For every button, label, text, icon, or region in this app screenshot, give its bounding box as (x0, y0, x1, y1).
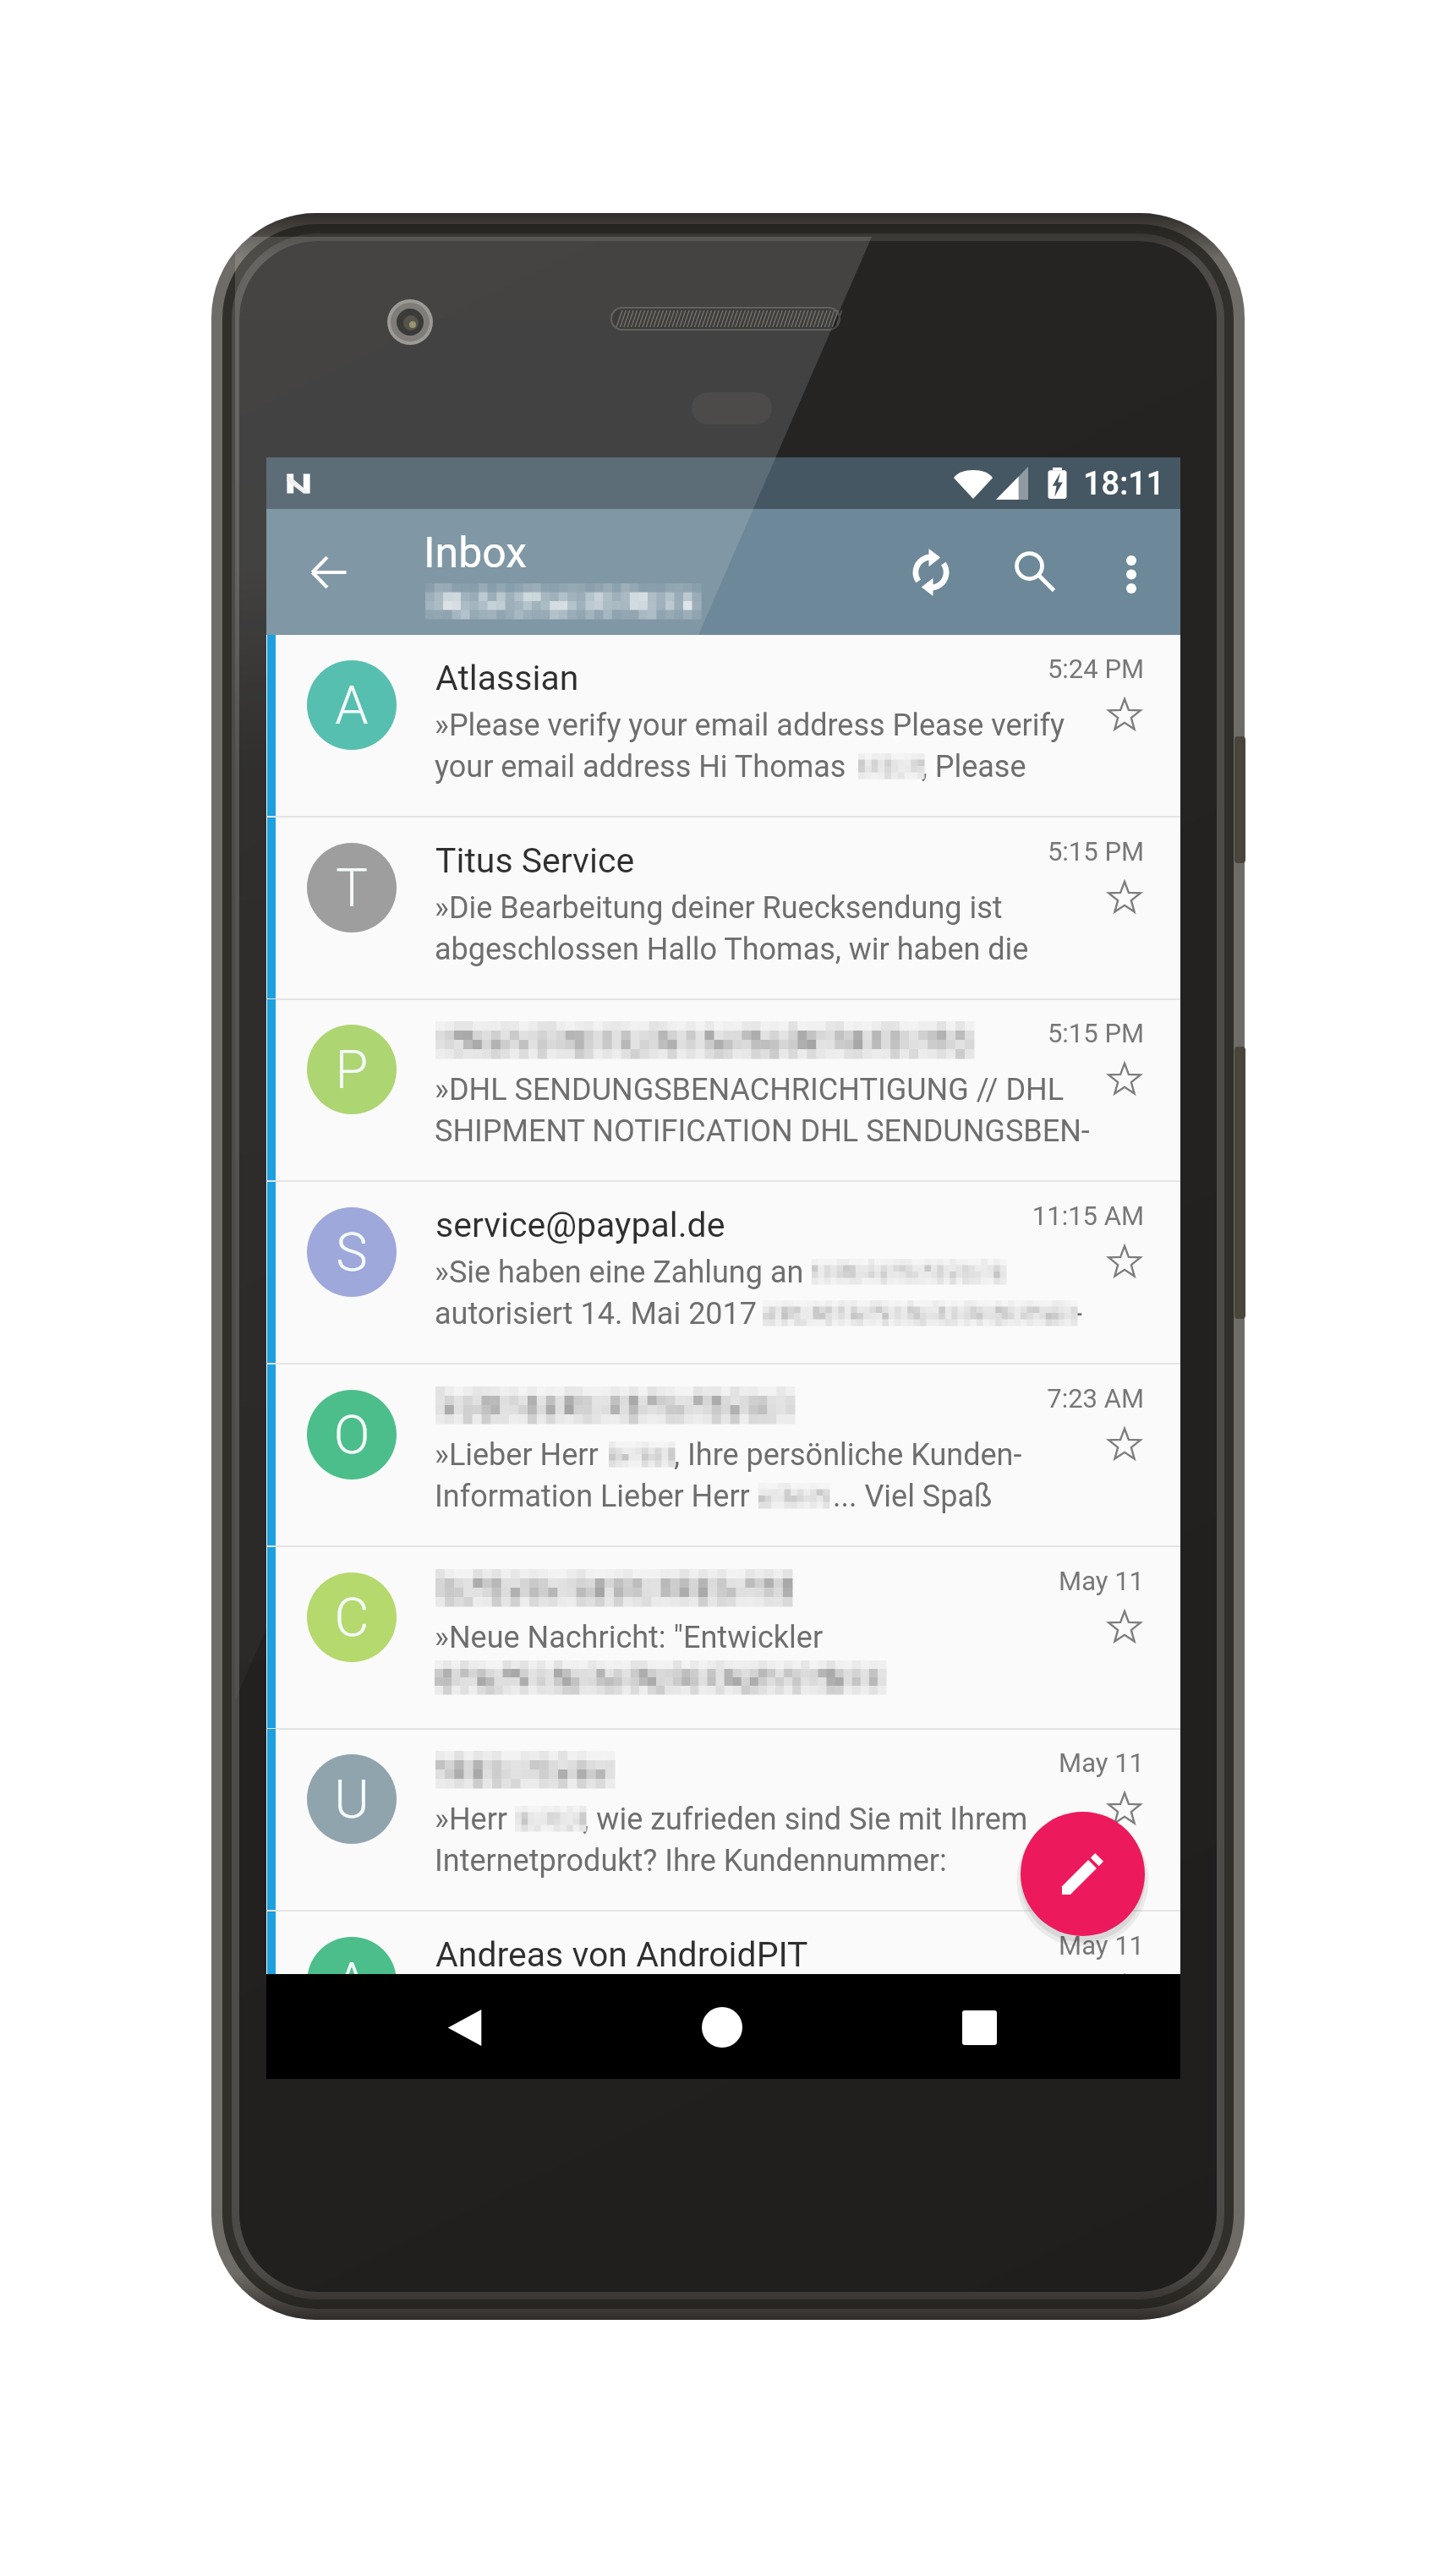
staticText: service@paypal.de (435, 1205, 725, 1245)
button[interactable]: A (266, 1911, 1180, 1974)
staticText: your email address Hi Thomas , Please (435, 749, 1026, 785)
button[interactable]: C (266, 1547, 1180, 1730)
staticText: P (307, 1039, 397, 1102)
button[interactable]: More options (1093, 533, 1171, 610)
staticText: May 11 (940, 1747, 1144, 1778)
staticText: 5:24 PM (940, 654, 1144, 684)
button[interactable]: U (266, 1729, 1180, 1911)
staticText: A (307, 1951, 397, 1974)
staticText: »Neue Nachricht: "Entwickler (435, 1620, 824, 1655)
button[interactable]: Compose new message (1021, 1812, 1145, 1936)
button[interactable]: S (266, 1182, 1180, 1365)
staticText: S (307, 1222, 397, 1284)
button[interactable]: T (266, 818, 1180, 1000)
staticText: Information Lieber Herr ... Viel Spaß (435, 1479, 993, 1514)
staticText: A (307, 675, 397, 737)
button[interactable]: Back (414, 1985, 516, 2087)
button[interactable]: Refresh (892, 533, 970, 610)
staticText: U (307, 1769, 397, 1831)
staticText: T (307, 857, 397, 920)
staticText: 18:11 (1083, 465, 1165, 503)
staticText: abgeschlossen Hallo Thomas, wir haben di… (435, 932, 1029, 967)
button[interactable]: Recent apps (928, 1985, 1030, 2087)
staticText: Titus Service (435, 840, 635, 881)
staticText: Internetprodukt? Ihre Kundennummer: (435, 1843, 947, 1879)
button[interactable]: Search (996, 533, 1074, 610)
staticText: »Lieber Herr , Ihre persönliche Kunden- (435, 1437, 1022, 1473)
staticText: »Herr , wie zufrieden sind Sie mit Ihrem (435, 1802, 1028, 1837)
button[interactable]: P (266, 999, 1180, 1182)
button[interactable]: Home (671, 1985, 773, 2087)
staticText: May 11 (940, 1566, 1144, 1596)
button[interactable]: O (266, 1365, 1180, 1547)
staticText: O (307, 1404, 397, 1467)
button[interactable]: A (266, 635, 1180, 818)
staticText: »Sie haben eine Zahlung an (435, 1255, 804, 1290)
staticText: 11:15 AM (940, 1200, 1144, 1231)
staticText: »Die Bearbeitung deiner Ruecksendung ist (435, 890, 1003, 926)
staticText: »Please verify your email address Please… (435, 708, 1065, 743)
button[interactable]: Navigate up (288, 532, 369, 613)
staticText: »DHL SENDUNGSBENACHRICHTIGUNG // DHL (435, 1072, 1065, 1108)
staticText: May 11 (940, 1930, 1144, 1961)
staticText: Inbox (424, 528, 528, 578)
staticText: Andreas von AndroidPIT (435, 1934, 808, 1974)
staticText: 5:15 PM (940, 1018, 1144, 1048)
staticText: Atlassian (435, 658, 579, 698)
staticText: 5:15 PM (940, 836, 1144, 867)
staticText: autorisiert 14. Mai 2017 - (435, 1296, 1083, 1332)
staticText: 7:23 AM (940, 1383, 1144, 1414)
staticText: C (307, 1587, 397, 1649)
staticText: SHIPMENT NOTIFICATION DHL SENDUNGSBEN- (435, 1113, 1090, 1149)
